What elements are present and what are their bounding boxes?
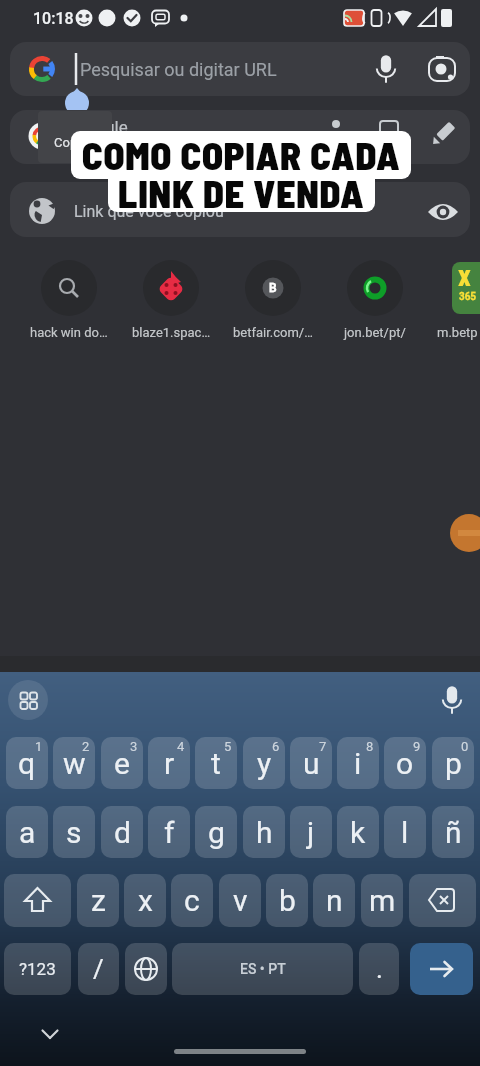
button[interactable]: x	[124, 874, 166, 927]
button[interactable]: k	[337, 806, 379, 858]
button[interactable]: ?123	[4, 943, 71, 995]
staticText: 10:18	[33, 9, 74, 28]
staticText: o	[396, 746, 414, 781]
button[interactable]: z	[77, 874, 119, 927]
staticText: 2	[82, 739, 90, 754]
button[interactable]: j	[290, 806, 332, 858]
button[interactable]: r	[148, 737, 190, 789]
button[interactable]	[432, 680, 472, 720]
button[interactable]: ñ	[432, 806, 474, 858]
button[interactable]: /	[78, 943, 119, 995]
staticText: /	[93, 954, 104, 984]
staticText: 5	[224, 739, 232, 754]
staticText: X	[458, 264, 471, 290]
staticText: Google	[74, 117, 128, 137]
button[interactable]: m	[361, 874, 403, 927]
staticText: 4	[177, 739, 185, 754]
button[interactable]: i	[337, 737, 379, 789]
staticText: 3	[130, 739, 138, 754]
staticText: f	[164, 815, 175, 850]
button[interactable]: e	[101, 737, 143, 789]
button[interactable]: t	[195, 737, 237, 789]
staticText: 0	[461, 739, 469, 754]
button[interactable]: q	[6, 737, 48, 789]
button[interactable]: l	[384, 806, 426, 858]
staticText: .	[376, 954, 383, 984]
button[interactable]	[150, 1042, 330, 1062]
staticText: n	[326, 883, 343, 918]
button[interactable]: b	[266, 874, 308, 927]
staticText: jon.bet/pt/	[344, 325, 406, 340]
button[interactable]: c	[171, 874, 213, 927]
staticText: hack win do…	[30, 325, 108, 340]
staticText: B	[269, 281, 277, 295]
staticText: 365	[459, 291, 477, 303]
staticText: 7	[319, 739, 327, 754]
button[interactable]	[8, 680, 48, 720]
button[interactable]: h	[243, 806, 285, 858]
staticText: p	[445, 746, 462, 781]
button[interactable]: g	[195, 806, 237, 858]
button[interactable]: w	[53, 737, 95, 789]
button[interactable]: ES • PT	[172, 943, 353, 995]
button[interactable]	[10, 42, 470, 96]
staticText: 6	[272, 739, 280, 754]
staticText: r	[164, 746, 175, 781]
button[interactable]: s	[53, 806, 95, 858]
button[interactable]	[335, 258, 415, 344]
staticText: e	[114, 746, 130, 781]
staticText: g	[208, 815, 225, 850]
staticText: c	[184, 883, 200, 918]
button[interactable]	[233, 258, 313, 344]
button[interactable]: u	[290, 737, 332, 789]
button[interactable]	[366, 49, 406, 89]
button[interactable]: .	[359, 943, 399, 995]
staticText: s	[66, 815, 82, 850]
staticText: q	[18, 746, 36, 781]
staticText: LINK DE VENDA	[118, 170, 365, 212]
staticText: 9	[413, 739, 421, 754]
button[interactable]: p	[432, 737, 474, 789]
button[interactable]	[10, 182, 470, 237]
button[interactable]: m.betpix…	[437, 322, 480, 342]
button[interactable]	[29, 258, 109, 344]
button[interactable]	[423, 49, 463, 89]
button[interactable]	[423, 192, 463, 232]
staticText: u	[303, 746, 320, 781]
button[interactable]: o	[384, 737, 426, 789]
button[interactable]: d	[101, 806, 143, 858]
staticText: Copiar	[54, 135, 92, 150]
staticText: y	[257, 746, 272, 781]
staticText: m.betpix…	[437, 325, 480, 340]
button[interactable]	[125, 943, 167, 995]
button[interactable]: Copiar	[38, 111, 112, 163]
staticText: h	[256, 815, 273, 850]
staticText: 1	[35, 739, 43, 754]
staticText: a	[19, 815, 36, 850]
staticText: 8	[366, 739, 374, 754]
staticText: m	[369, 883, 396, 918]
button[interactable]	[10, 110, 470, 164]
staticText: t	[211, 746, 221, 781]
staticText: x	[138, 883, 153, 918]
staticText: j	[307, 815, 315, 850]
button[interactable]	[423, 117, 463, 157]
button[interactable]: n	[313, 874, 355, 927]
staticText: z	[91, 883, 106, 918]
staticText: betfair.com/…	[233, 325, 313, 340]
button[interactable]: f	[148, 806, 190, 858]
staticText: COMO COPIAR CADA	[82, 132, 401, 178]
button[interactable]	[30, 1014, 70, 1054]
staticText: v	[233, 883, 248, 918]
button[interactable]: v	[219, 874, 261, 927]
button[interactable]	[409, 874, 476, 927]
staticText: ES • PT	[240, 961, 286, 977]
staticText: Link que você copiou	[74, 202, 224, 221]
staticText: ?123	[19, 959, 56, 979]
button[interactable]: y	[243, 737, 285, 789]
button[interactable]: a	[6, 806, 48, 858]
staticText: i	[354, 746, 362, 781]
button[interactable]	[131, 258, 211, 344]
button[interactable]	[410, 943, 473, 995]
button[interactable]	[4, 874, 71, 927]
